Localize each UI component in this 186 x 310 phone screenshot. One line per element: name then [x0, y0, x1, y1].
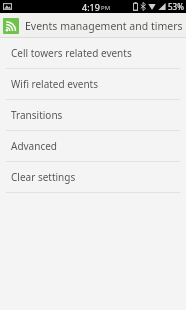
staticText: PM	[101, 4, 111, 12]
button[interactable]: Advanced	[0, 131, 186, 161]
staticText: Wifi related events	[11, 77, 98, 91]
staticText: Transitions	[11, 108, 63, 122]
button[interactable]: Wifi related events	[0, 69, 186, 99]
staticText: Advanced	[11, 139, 57, 153]
staticText: 4:19	[82, 1, 100, 13]
button[interactable]: Transitions	[0, 100, 186, 130]
staticText: 53%	[168, 1, 184, 12]
button[interactable]: Clear settings	[0, 162, 186, 192]
staticText: Events management and timers	[25, 19, 183, 33]
staticText: Cell towers related events	[11, 46, 132, 60]
button[interactable]: Events management and timers	[0, 13, 186, 38]
button[interactable]: Cell towers related events	[0, 38, 186, 68]
staticText: Clear settings	[11, 170, 76, 184]
